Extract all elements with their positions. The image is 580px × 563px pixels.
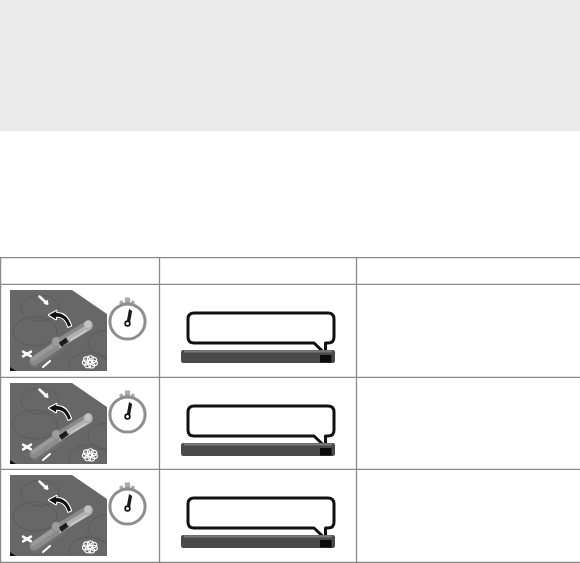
button[interactable]: Step 3: turn the control knob and wait f… xyxy=(0,470,580,563)
button[interactable]: Step 2: turn the control knob and wait f… xyxy=(0,378,580,470)
button[interactable] xyxy=(0,257,580,285)
button[interactable]: Step 1: turn the control knob and wait f… xyxy=(0,285,580,378)
